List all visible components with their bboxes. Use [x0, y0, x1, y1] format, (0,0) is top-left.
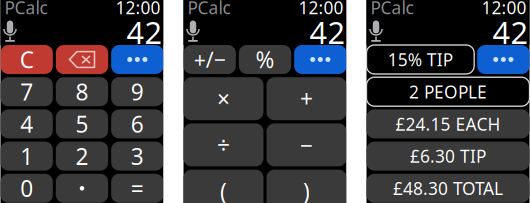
button[interactable]: 8 [56, 77, 108, 106]
button[interactable]: 5 [56, 109, 108, 138]
button[interactable]: × [183, 77, 263, 120]
button[interactable]: C [0, 45, 53, 74]
button[interactable]: 15% TIP [366, 45, 474, 74]
staticText: 3 [131, 141, 144, 171]
button[interactable]: More [294, 45, 346, 74]
staticText: £48.30 TOTAL [393, 177, 503, 200]
button[interactable]: ( [183, 170, 263, 203]
staticText: 12:00 [115, 0, 160, 19]
staticText: PCalc [187, 0, 230, 19]
staticText: × [217, 84, 230, 114]
button[interactable]: £24.15 EACH [366, 109, 529, 138]
staticText: 1 [20, 141, 33, 171]
button[interactable]: = [111, 174, 163, 203]
staticText: C [20, 44, 34, 74]
staticText: 0 [20, 173, 33, 203]
button[interactable]: Decimal point [56, 174, 108, 203]
button[interactable]: +/− [183, 45, 236, 74]
button[interactable]: 6 [111, 109, 163, 138]
staticText: 9 [131, 77, 144, 107]
button[interactable]: £48.30 TOTAL [366, 174, 529, 203]
staticText: £6.30 TIP [410, 145, 486, 168]
staticText: PCalc [4, 0, 47, 19]
staticText: 2 PEOPLE [409, 80, 487, 103]
button[interactable]: 7 [0, 77, 53, 106]
staticText: +/− [194, 45, 226, 74]
button[interactable]: 0 [0, 174, 53, 203]
button[interactable]: ÷ [183, 123, 263, 166]
button[interactable]: Delete [56, 45, 108, 74]
staticText: + [300, 84, 313, 114]
staticText: − [300, 130, 313, 160]
staticText: 42 [492, 12, 528, 52]
staticText: 12:00 [481, 0, 526, 19]
button[interactable]: 4 [0, 109, 53, 138]
button[interactable]: More [111, 45, 163, 74]
button[interactable]: % [239, 45, 291, 74]
button[interactable]: + [266, 77, 346, 120]
staticText: PCalc [370, 0, 413, 19]
staticText: 2 [75, 141, 88, 171]
staticText: 4 [20, 109, 33, 139]
staticText: % [255, 44, 274, 74]
button[interactable]: More [477, 45, 529, 74]
staticText: = [131, 173, 144, 203]
button[interactable]: − [266, 123, 346, 166]
staticText: 42 [126, 12, 162, 52]
staticText: 6 [131, 109, 144, 139]
button[interactable]: £6.30 TIP [366, 142, 529, 171]
staticText: ÷ [217, 130, 230, 160]
staticText: 15% TIP [388, 48, 453, 71]
button[interactable]: 1 [0, 142, 53, 171]
staticText: 42 [309, 12, 345, 52]
button[interactable]: 3 [111, 142, 163, 171]
button[interactable]: 2 [56, 142, 108, 171]
button[interactable]: ) [266, 170, 346, 203]
button[interactable]: 2 PEOPLE [366, 77, 529, 106]
staticText: ( [220, 176, 227, 203]
staticText: £24.15 EACH [395, 112, 500, 135]
staticText: 5 [75, 109, 88, 139]
staticText: 7 [20, 77, 33, 107]
staticText: ) [303, 176, 310, 203]
staticText: 12:00 [298, 0, 343, 19]
staticText: 8 [75, 77, 88, 107]
button[interactable]: 9 [111, 77, 163, 106]
